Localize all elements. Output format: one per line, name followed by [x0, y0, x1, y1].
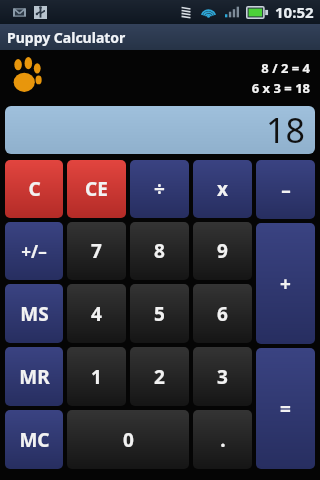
staticText: MR: [19, 364, 50, 390]
button[interactable]: –: [256, 160, 315, 219]
staticText: +/–: [21, 240, 47, 263]
staticText: 4: [91, 301, 102, 327]
staticText: =: [280, 396, 291, 422]
button[interactable]: 6: [193, 284, 252, 343]
button[interactable]: MC: [5, 410, 63, 469]
staticText: ÷: [154, 176, 165, 202]
button[interactable]: 7: [67, 222, 126, 280]
button[interactable]: 18: [5, 106, 315, 154]
button[interactable]: CE: [67, 160, 126, 218]
staticText: 6 x 3 = 18: [251, 79, 310, 97]
staticText: MS: [20, 301, 49, 327]
button[interactable]: +/–: [5, 222, 63, 280]
button[interactable]: 2: [130, 347, 189, 406]
staticText: x: [217, 176, 228, 202]
button[interactable]: C: [5, 160, 63, 218]
staticText: 10:52: [275, 2, 314, 22]
button[interactable]: 1: [67, 347, 126, 406]
button[interactable]: MS: [5, 284, 63, 343]
staticText: 9: [217, 238, 228, 264]
button[interactable]: ÷: [130, 160, 189, 218]
button[interactable]: +: [256, 223, 315, 344]
staticText: 18: [266, 107, 305, 153]
staticText: 1: [91, 364, 102, 390]
staticText: C: [28, 176, 41, 202]
staticText: –: [281, 177, 291, 203]
button[interactable]: 4: [67, 284, 126, 343]
staticText: 0: [123, 427, 134, 453]
button[interactable]: 9: [193, 222, 252, 280]
button[interactable]: =: [256, 348, 315, 469]
staticText: .: [220, 427, 226, 453]
button[interactable]: 3: [193, 347, 252, 406]
staticText: 3: [217, 364, 228, 390]
button[interactable]: MR: [5, 347, 63, 406]
button[interactable]: x: [193, 160, 252, 218]
staticText: 6: [217, 301, 228, 327]
button[interactable]: 0: [67, 410, 189, 469]
staticText: +: [280, 271, 291, 297]
button[interactable]: 8: [130, 222, 189, 280]
staticText: 5: [154, 301, 165, 327]
staticText: CE: [85, 176, 108, 202]
staticText: Puppy Calculator: [7, 28, 126, 47]
staticText: MC: [19, 427, 50, 453]
button[interactable]: 5: [130, 284, 189, 343]
staticText: 8 / 2 = 4: [261, 59, 310, 77]
staticText: 2: [154, 364, 165, 390]
button[interactable]: .: [193, 410, 252, 469]
staticText: 8: [154, 238, 165, 264]
staticText: 7: [91, 238, 102, 264]
